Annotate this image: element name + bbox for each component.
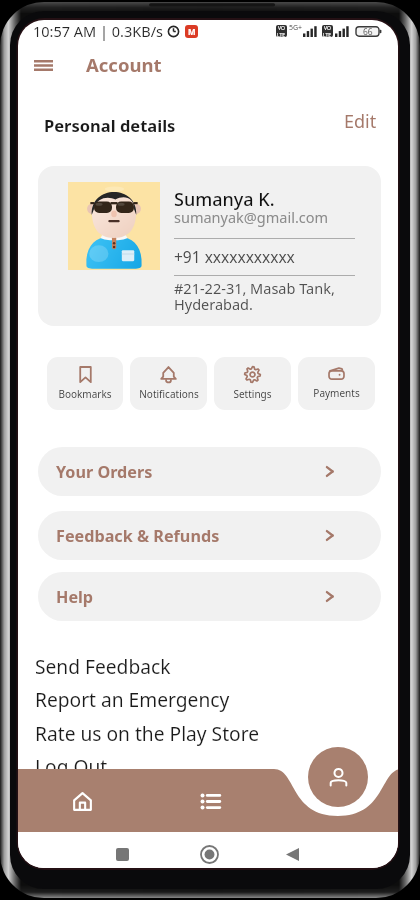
staticText: Your Orders [56,461,153,483]
staticText: Help [56,586,94,608]
button[interactable]: Home button [200,845,219,864]
staticText: Rate us on the Play Store [35,720,260,746]
staticText: Account [86,52,162,77]
button[interactable]: Log Out [25,750,325,781]
staticText: Notifications [139,387,199,401]
button[interactable]: Report an Emergency [25,683,325,714]
staticText: sumanyak@gmail.com [174,207,329,227]
staticText: LTE [277,32,286,37]
staticText: M [188,26,196,37]
button[interactable]: Edit [334,105,386,137]
staticText: Personal details [44,114,176,136]
staticText: Edit [344,109,377,134]
staticText: LTE [323,32,332,37]
staticText: Report an Emergency [35,686,230,712]
staticText: VO [278,25,285,32]
button[interactable]: Payments [298,357,375,410]
button[interactable]: Menu [23,48,63,83]
button[interactable]: Rate us on the Play Store [25,717,325,748]
staticText: Bookmarks [58,387,112,401]
button[interactable]: Orders list [195,786,225,816]
staticText: Log Out [35,753,108,779]
button[interactable]: Account profile [308,747,368,807]
staticText: 5G+ [289,23,303,33]
button[interactable]: Send Feedback [25,650,325,681]
staticText: VO [324,25,331,32]
button[interactable]: Recents [116,848,129,861]
staticText: 10:57 AM | 0.3KB/s [33,21,163,41]
button[interactable]: Bookmarks [47,357,123,410]
staticText: +91 xxxxxxxxxxx [174,246,295,267]
staticText: Send Feedback [35,653,171,679]
button[interactable]: Home [67,786,97,816]
button[interactable]: Help [38,572,381,621]
staticText: Feedback & Refunds [56,525,220,547]
button[interactable]: Back [286,848,299,861]
staticText: Sumanya K. [174,187,275,212]
button[interactable]: Notifications [130,357,207,410]
staticText: #21-22-31, Masab Tank, Hyderabad. [174,278,335,314]
button[interactable]: Settings [214,357,291,410]
button[interactable]: Your Orders [38,447,381,496]
staticText: 66 [363,26,373,38]
button[interactable]: Feedback & Refunds [38,511,381,560]
staticText: Settings [233,387,272,401]
staticText: Payments [313,386,360,400]
